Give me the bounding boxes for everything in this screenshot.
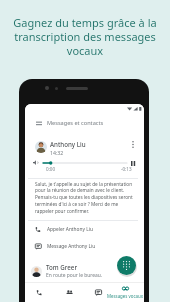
staticText: 14:32 [50, 149, 64, 156]
staticText: Tom Greer [46, 263, 78, 271]
button[interactable]: Voicemail [111, 282, 139, 302]
staticText: Messages vocaux [105, 293, 144, 299]
button[interactable]: More options [127, 139, 138, 150]
other: Messages [95, 289, 102, 296]
button[interactable]: Messages et contacts [29, 115, 139, 131]
button[interactable]: Contacts [55, 282, 83, 302]
other: Voicemail [122, 285, 129, 292]
other: Contacts [66, 289, 73, 296]
button[interactable]: Messages [84, 282, 112, 302]
staticText: Gagnez du temps grâce à la transcription… [6, 15, 164, 58]
button[interactable]: Dialpad [117, 256, 136, 275]
button[interactable]: Appeler Anthony Liu [35, 223, 138, 236]
staticText: Salut, je t'appelle au sujet de la prése… [35, 181, 137, 215]
staticText: Messages et contacts [47, 119, 104, 127]
staticText: Anthony Liu [50, 140, 86, 148]
staticText: Message Anthony Liu [47, 243, 96, 250]
button[interactable]: Message Anthony Liu [35, 240, 138, 253]
other: Calls [36, 289, 43, 296]
button[interactable]: Pause [129, 159, 137, 167]
staticText: En route pour le bureau. [46, 272, 103, 279]
staticText: 0:00 [46, 166, 56, 172]
staticText: -0:13 [121, 166, 132, 172]
button[interactable]: Anthony Liu [28, 136, 138, 256]
button[interactable]: Tom Greer [31, 260, 144, 282]
staticText: Appeler Anthony Liu [47, 226, 93, 233]
button[interactable]: Calls [25, 282, 53, 302]
